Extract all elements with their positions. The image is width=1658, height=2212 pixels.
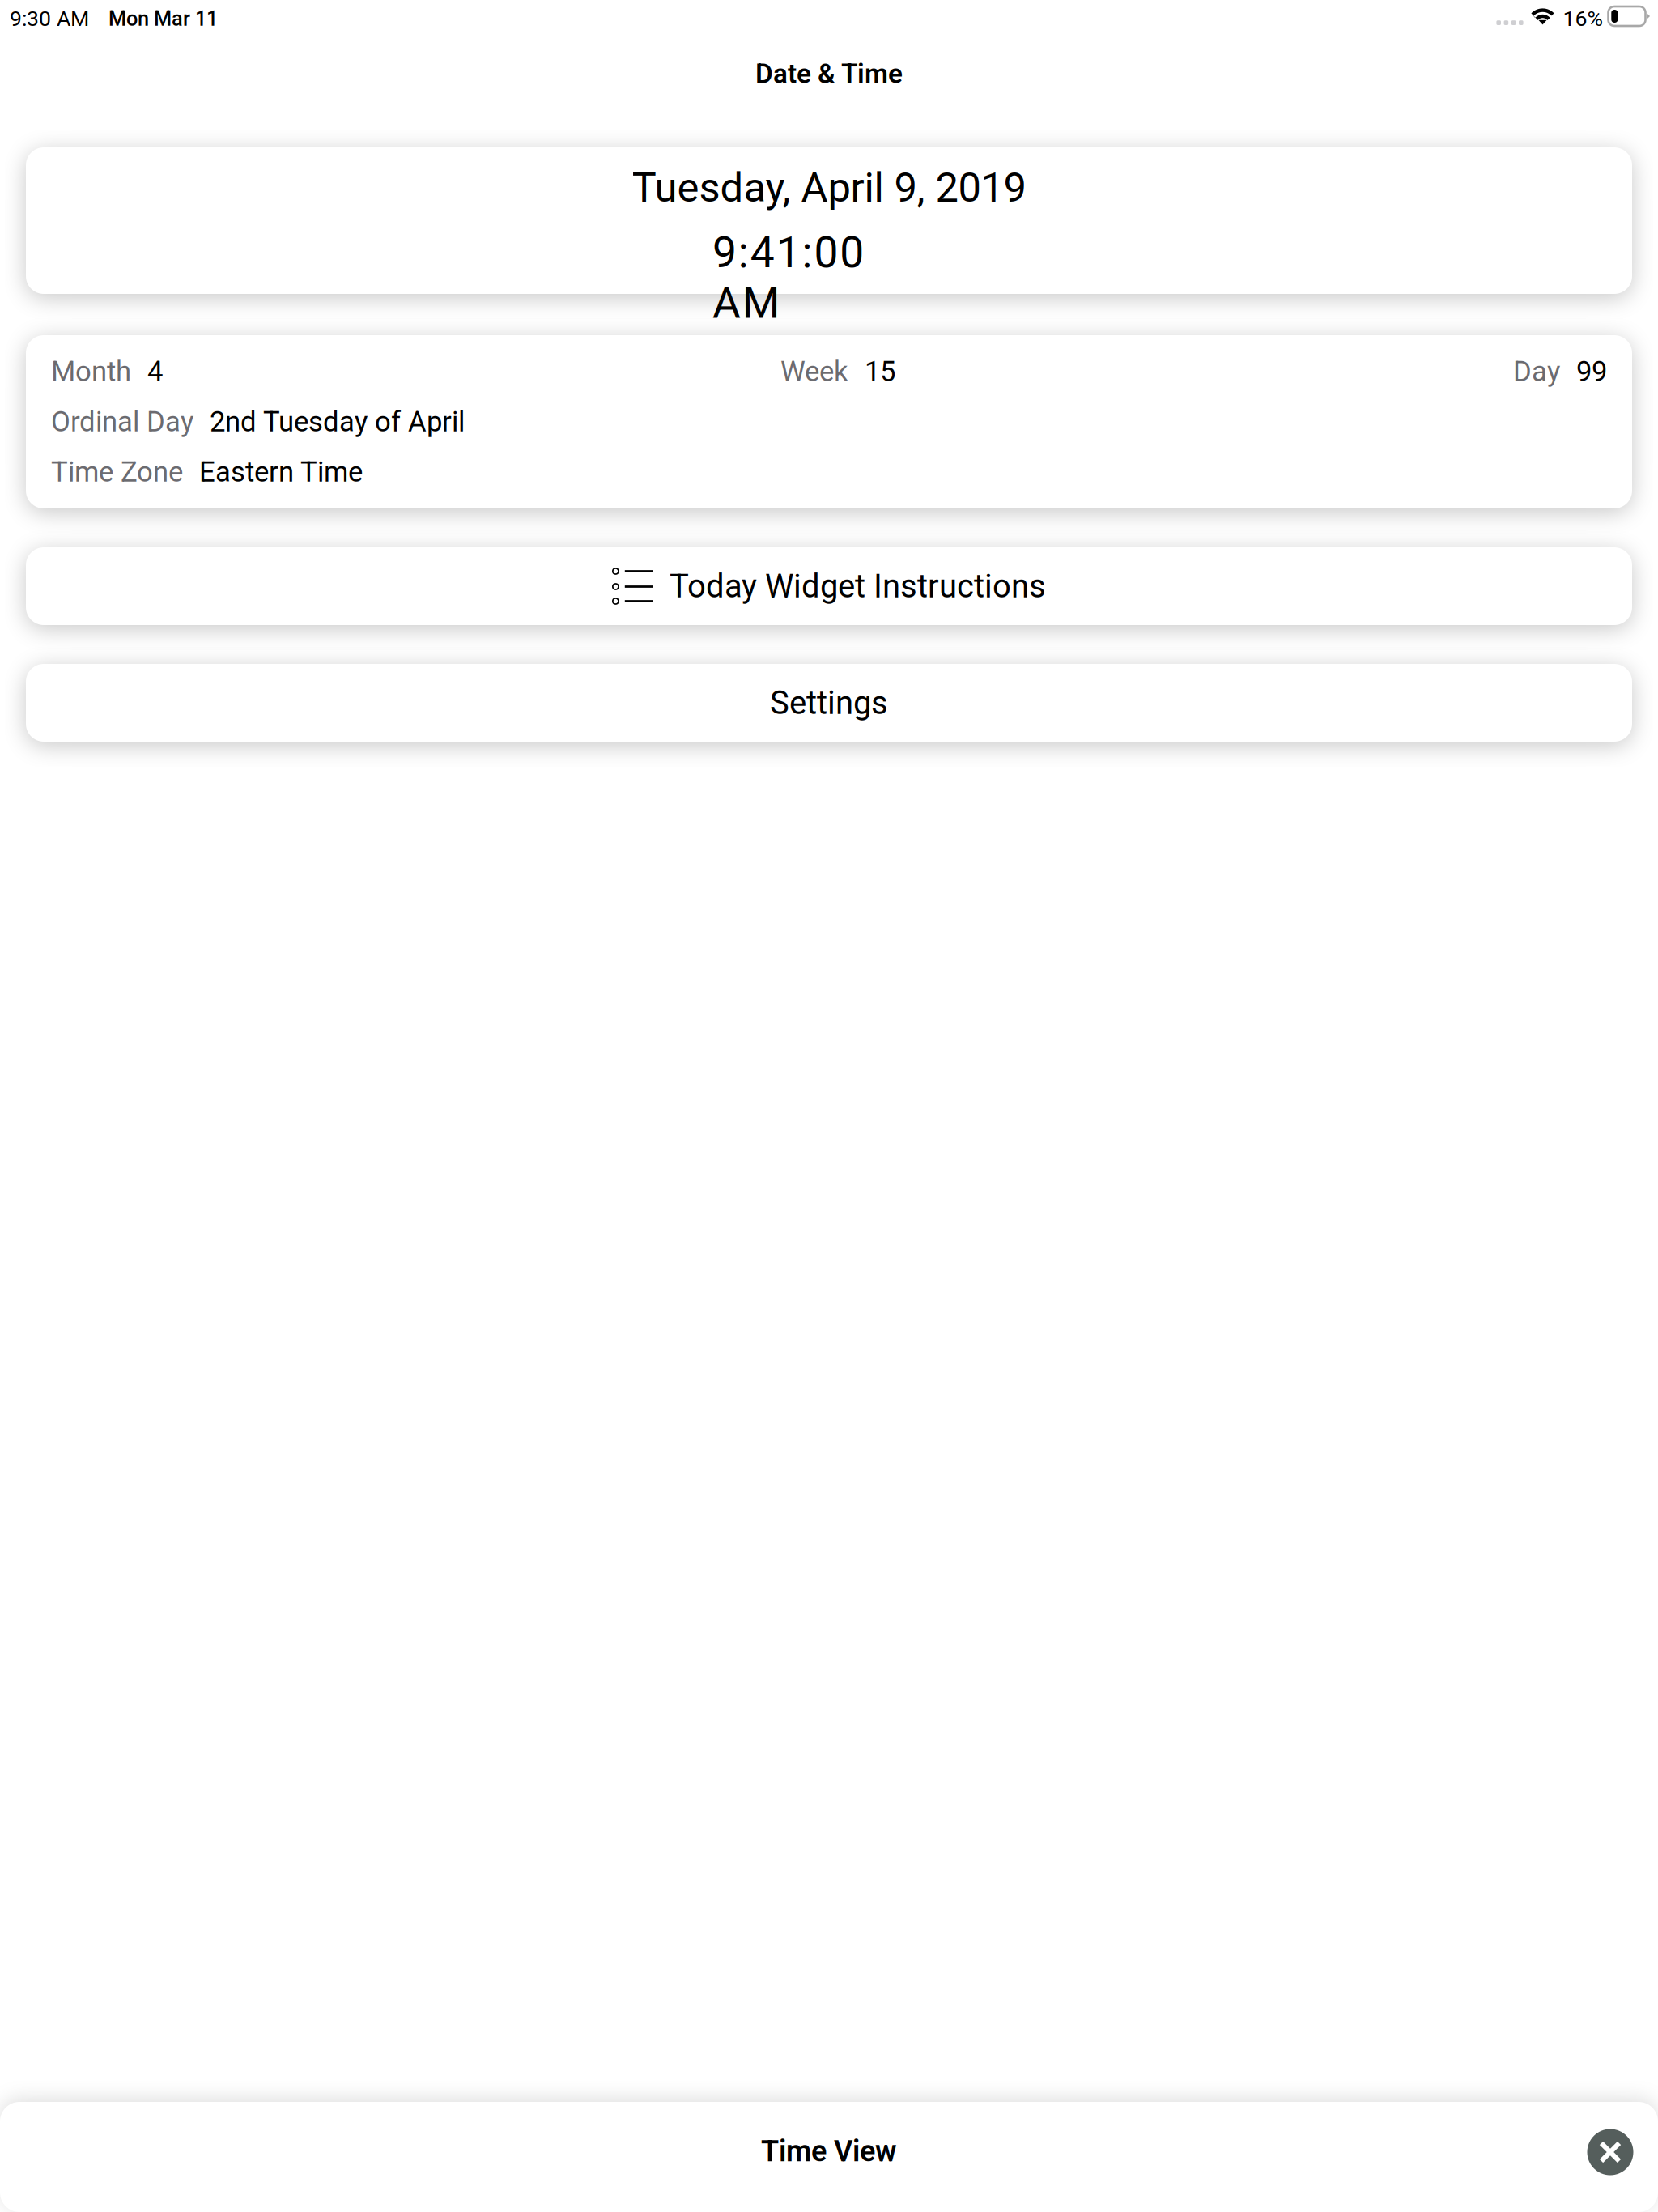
- staticText: 2nd Tuesday of April: [210, 405, 465, 438]
- staticText: Week: [780, 355, 848, 388]
- staticText: Date & Time: [755, 58, 903, 90]
- staticText: Time Zone: [51, 456, 183, 488]
- staticText: Time View: [761, 2134, 897, 2168]
- staticText: Settings: [770, 684, 888, 722]
- staticText: 15: [865, 355, 895, 388]
- button[interactable]: Settings: [26, 664, 1632, 742]
- staticText: Day: [1513, 355, 1560, 388]
- staticText: Mon Mar 11: [108, 7, 218, 31]
- button[interactable]: Today Widget Instructions: [26, 547, 1632, 625]
- staticText: Tuesday, April 9, 2019: [632, 164, 1026, 212]
- staticText: 4: [147, 355, 163, 388]
- staticText: 9:41:00 AM: [712, 227, 946, 278]
- staticText: 16%: [1563, 6, 1603, 31]
- staticText: Today Widget Instructions: [670, 567, 1046, 605]
- staticText: 99: [1576, 355, 1607, 388]
- staticText: Eastern Time: [199, 456, 363, 488]
- button[interactable]: Close: [1566, 2108, 1655, 2197]
- staticText: 9:30 AM: [10, 6, 89, 31]
- staticText: Month: [51, 355, 131, 388]
- staticText: Ordinal Day: [51, 405, 193, 438]
